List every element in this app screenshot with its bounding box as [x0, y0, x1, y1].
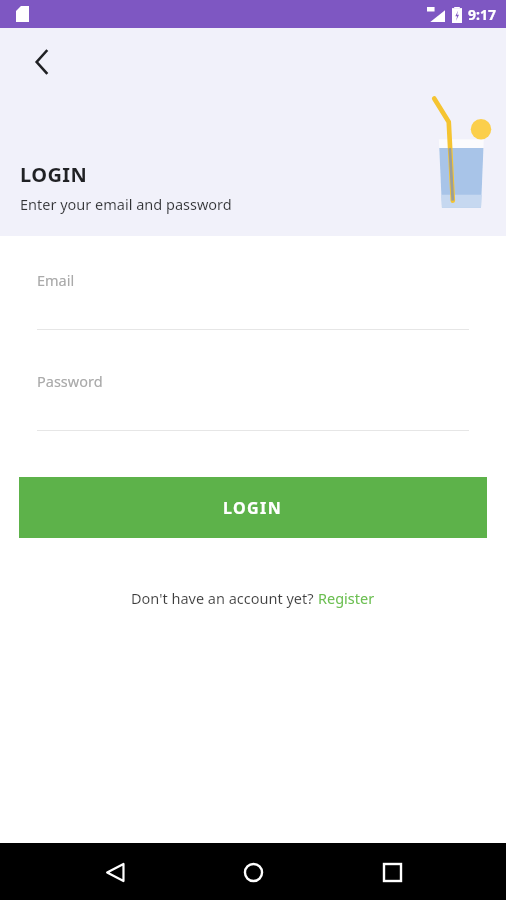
button[interactable]: Back	[20, 40, 64, 84]
staticText: LOGIN	[223, 497, 283, 519]
staticText: Password	[37, 371, 103, 391]
button[interactable]: Back	[91, 848, 139, 896]
button[interactable]: Register	[318, 588, 375, 608]
button[interactable]: Email	[37, 270, 469, 330]
staticText: Enter your email and password	[20, 194, 232, 214]
staticText: 9:17	[468, 5, 496, 24]
button[interactable]: LOGIN	[19, 477, 487, 538]
button[interactable]: Recent apps	[368, 848, 416, 896]
button[interactable]: Password	[37, 371, 469, 431]
staticText: LOGIN	[20, 161, 88, 188]
staticText: Register	[318, 588, 375, 608]
button[interactable]: Home	[229, 848, 277, 896]
staticText: Don't have an account yet?	[131, 588, 318, 608]
staticText: Email	[37, 270, 75, 290]
